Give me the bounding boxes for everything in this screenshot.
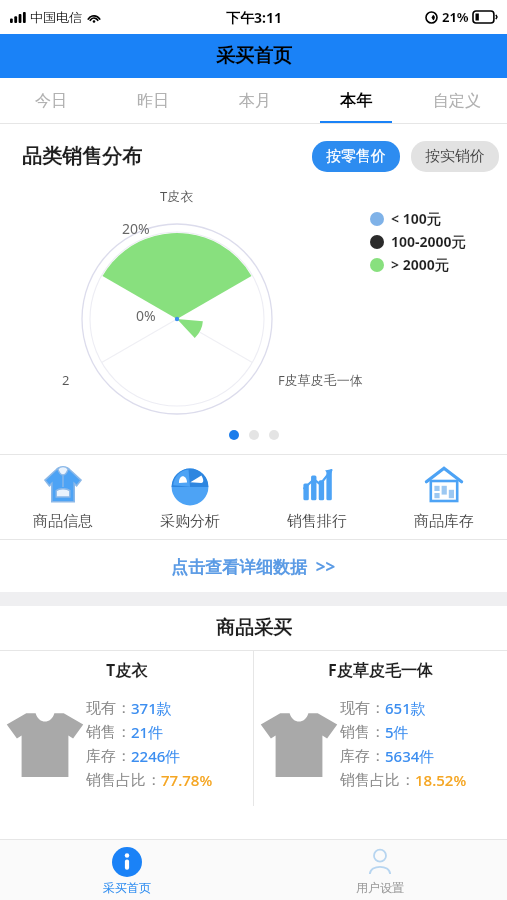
staticText: 库存： [86, 747, 131, 766]
staticText: 5634件 [385, 746, 435, 766]
other: 采购分析 [170, 465, 210, 505]
staticText: 销售占比： [86, 771, 161, 790]
staticText: 5件 [385, 722, 409, 742]
staticText: 商品库存 [414, 512, 474, 531]
button[interactable]: 销售排行 [253, 455, 380, 539]
button[interactable]: 今日 [0, 78, 102, 124]
button[interactable]: 自定义 [406, 78, 507, 124]
staticText: 按零售价 [326, 147, 386, 166]
staticText: 2246件 [131, 746, 181, 766]
staticText: 采买首页 [216, 44, 292, 68]
button[interactable]: 采购分析 [126, 455, 253, 539]
button[interactable]: T皮衣 [0, 651, 253, 806]
button[interactable]: 本年 [305, 78, 406, 124]
staticText: T皮衣 [106, 659, 148, 681]
staticText: 本月 [239, 91, 271, 111]
button[interactable]: 按实销价 [411, 141, 499, 172]
other: 用户设置 [365, 847, 395, 877]
button[interactable]: F皮草皮毛一体 [254, 651, 507, 806]
staticText: 用户设置 [356, 880, 404, 895]
staticText: 库存： [340, 747, 385, 766]
staticText: T皮衣 [160, 187, 194, 205]
staticText: 77.78% [161, 770, 213, 790]
button[interactable]: 商品信息 [0, 455, 126, 539]
staticText: 采购分析 [160, 512, 220, 531]
staticText: 今日 [35, 91, 67, 111]
staticText: 中国电信 [30, 9, 82, 25]
staticText: 昨日 [137, 91, 169, 111]
button[interactable]: 昨日 [102, 78, 204, 124]
staticText: 100-2000元 [391, 232, 466, 251]
staticText: < 100元 [391, 209, 441, 228]
staticText: 0% [136, 306, 156, 325]
other: 采买首页 [112, 847, 142, 877]
staticText: 品类销售分布 [22, 144, 142, 169]
staticText: F皮草皮毛一体 [278, 371, 363, 389]
staticText: 2 [62, 371, 70, 389]
staticText: 下午3:11 [226, 8, 282, 27]
button[interactable]: 商品库存 [380, 455, 507, 539]
staticText: 商品采买 [216, 616, 292, 640]
staticText: 本年 [340, 91, 372, 111]
button[interactable]: 采买首页 [0, 840, 253, 900]
staticText: 销售： [86, 723, 131, 742]
staticText: 现有： [340, 699, 385, 718]
staticText: 现有： [86, 699, 131, 718]
staticText: 按实销价 [425, 147, 485, 166]
button[interactable]: 用户设置 [253, 840, 507, 900]
staticText: 销售： [340, 723, 385, 742]
other: 销售排行 [297, 465, 337, 505]
staticText: 20% [122, 219, 150, 238]
staticText: 21件 [131, 722, 164, 742]
staticText: 18.52% [415, 770, 467, 790]
staticText: 21% [442, 8, 469, 26]
staticText: 点击查看详细数据 >> [171, 555, 336, 578]
staticText: 自定义 [433, 91, 481, 111]
button[interactable]: 本月 [204, 78, 305, 124]
staticText: 651款 [385, 698, 426, 718]
staticText: 371款 [131, 698, 172, 718]
button[interactable]: 点击查看详细数据 >> [0, 540, 507, 592]
staticText: > 2000元 [391, 255, 449, 274]
staticText: 销售占比： [340, 771, 415, 790]
staticText: 采买首页 [103, 880, 151, 895]
other: 商品信息 [43, 465, 83, 505]
staticText: F皮草皮毛一体 [328, 659, 433, 681]
staticText: 销售排行 [287, 512, 347, 531]
button[interactable]: 按零售价 [312, 141, 400, 172]
other: 商品库存 [424, 465, 464, 505]
staticText: 商品信息 [33, 512, 93, 531]
